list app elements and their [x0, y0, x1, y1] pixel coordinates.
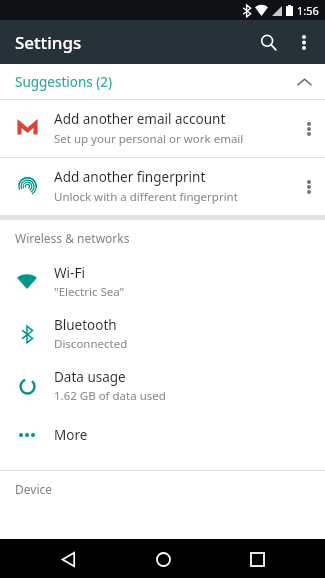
- button[interactable]: Bluetooth: [0, 308, 325, 360]
- staticText: Settings: [15, 31, 82, 54]
- staticText: 1.62 GB of data used: [54, 388, 166, 404]
- staticText: Device: [15, 481, 53, 497]
- button[interactable]: Suggestions (2): [0, 64, 325, 99]
- button[interactable]: Back: [52, 543, 84, 575]
- button[interactable]: Add another email account: [0, 100, 325, 157]
- button[interactable]: Wi-Fi: [0, 256, 325, 308]
- button[interactable]: Recents: [241, 543, 273, 575]
- staticText: More: [54, 426, 88, 444]
- staticText: Add another email account: [54, 110, 226, 128]
- staticText: Wi-Fi: [54, 264, 85, 282]
- staticText: 1:56: [297, 3, 319, 18]
- staticText: Unlock with a different fingerprint: [54, 189, 238, 205]
- button[interactable]: Data usage: [0, 360, 325, 412]
- button[interactable]: Search: [249, 23, 287, 61]
- staticText: Set up your personal or work email: [54, 131, 244, 147]
- button[interactable]: Add another fingerprint: [0, 158, 325, 215]
- button[interactable]: Options: [293, 158, 325, 215]
- staticText: Add another fingerprint: [54, 168, 206, 186]
- button[interactable]: Home: [147, 543, 179, 575]
- staticText: Suggestions (2): [15, 73, 298, 91]
- staticText: Disconnected: [54, 336, 128, 352]
- button[interactable]: More options: [287, 25, 321, 59]
- staticText: Wireless & networks: [15, 230, 130, 246]
- staticText: "Electric Sea": [54, 284, 125, 300]
- staticText: Data usage: [54, 368, 126, 386]
- button[interactable]: More: [0, 412, 325, 458]
- staticText: Bluetooth: [54, 316, 117, 334]
- button[interactable]: Options: [293, 100, 325, 157]
